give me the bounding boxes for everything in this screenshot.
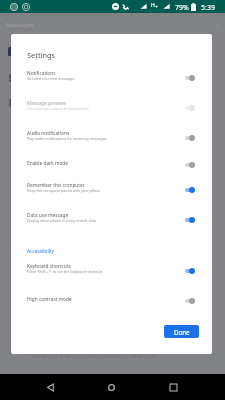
button[interactable]: Home	[95, 374, 127, 400]
button[interactable]: Recent apps	[157, 374, 189, 400]
staticText: See message content in notifications	[27, 106, 89, 111]
button[interactable]: Remember this computer	[11, 172, 212, 202]
staticText: Enable dark mode	[27, 160, 68, 167]
button[interactable]: Data use message	[11, 202, 212, 232]
staticText: Press 'Shift + ?' to see the keyboard sh…	[27, 269, 103, 274]
staticText: Your browser is not supported anymore bu…	[31, 353, 155, 359]
staticText: High contrast mode	[27, 296, 72, 303]
staticText: Audio notifications	[27, 130, 70, 137]
staticText: Remember this computer	[27, 182, 85, 189]
staticText: Get alerts for new messages	[27, 76, 75, 81]
button[interactable]: Keyboard shortcuts	[11, 253, 212, 283]
staticText: Settings	[27, 50, 56, 60]
button[interactable]: Notifications	[11, 60, 212, 90]
staticText: Display when phone is using mobile data	[27, 218, 97, 223]
button[interactable]: Back	[34, 374, 66, 400]
staticText: Accessibility	[27, 248, 55, 255]
staticText: Data use message	[27, 212, 69, 219]
staticText: Keep this computer paired with your phon…	[27, 188, 101, 193]
button[interactable]: High contrast mode	[11, 286, 212, 308]
button[interactable]: Enable dark mode	[11, 150, 212, 172]
staticText: H	[151, 2, 155, 9]
staticText: Notifications	[27, 70, 56, 77]
staticText: Message preview	[27, 100, 66, 107]
staticText: 5:39	[201, 3, 215, 13]
staticText: 79%	[175, 3, 189, 13]
button[interactable]: Message preview	[11, 90, 212, 120]
staticText: Messages	[6, 21, 34, 29]
staticText: Keyboard shortcuts	[27, 263, 71, 270]
button[interactable]: Audio notifications	[11, 120, 212, 150]
staticText: Done	[174, 328, 190, 336]
button[interactable]: More options	[215, 22, 220, 31]
staticText: Play audio notifications for incoming me…	[27, 136, 107, 141]
button[interactable]: Done	[164, 325, 199, 338]
staticText: +	[155, 4, 158, 11]
